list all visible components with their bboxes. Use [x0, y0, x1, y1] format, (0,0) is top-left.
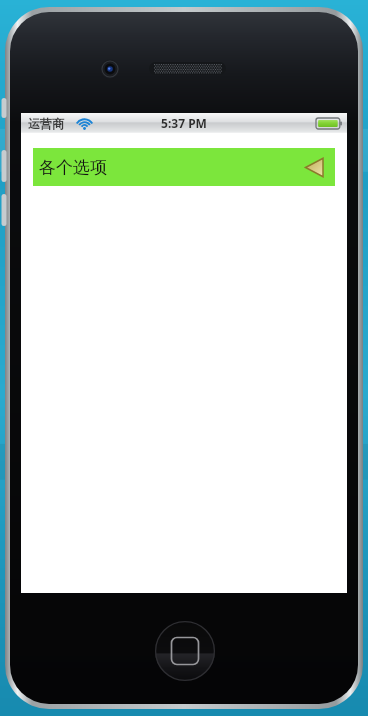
- button[interactable]: Home: [155, 621, 215, 681]
- staticText: 运营商: [28, 116, 64, 131]
- staticText: 5:37 PM: [161, 115, 207, 131]
- button[interactable]: Collapse section: [303, 155, 328, 180]
- button[interactable]: 各个选项: [33, 148, 335, 186]
- staticText: 各个选项: [39, 157, 107, 178]
